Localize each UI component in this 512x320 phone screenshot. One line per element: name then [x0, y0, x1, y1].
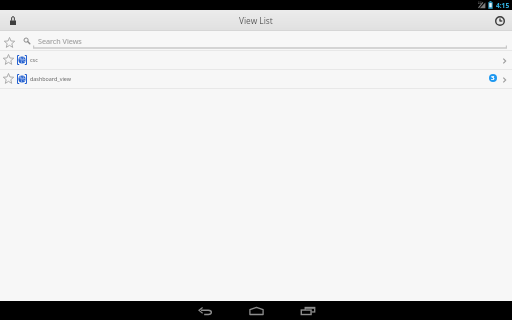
button[interactable]: Favorite [0, 69, 512, 89]
button[interactable]: Favorite [0, 50, 512, 70]
button[interactable]: Back [180, 301, 231, 320]
button[interactable]: Home [231, 301, 282, 320]
button[interactable]: Recent apps [282, 301, 333, 320]
staticText: csc [30, 56, 38, 63]
button[interactable]: 3 [489, 74, 497, 82]
button[interactable]: Favorite [1, 70, 16, 89]
button[interactable]: History [491, 10, 509, 31]
button[interactable]: Locked [4, 10, 22, 31]
staticText: 4:15 [496, 1, 510, 10]
staticText: dashboard_view [30, 75, 71, 82]
staticText: 3 [491, 74, 495, 82]
button[interactable]: Favorite [1, 51, 16, 70]
button[interactable]: Search [22, 32, 32, 50]
staticText: View List [239, 15, 273, 26]
button[interactable]: Favorite [1, 32, 17, 50]
staticText: Search Views [38, 36, 82, 46]
